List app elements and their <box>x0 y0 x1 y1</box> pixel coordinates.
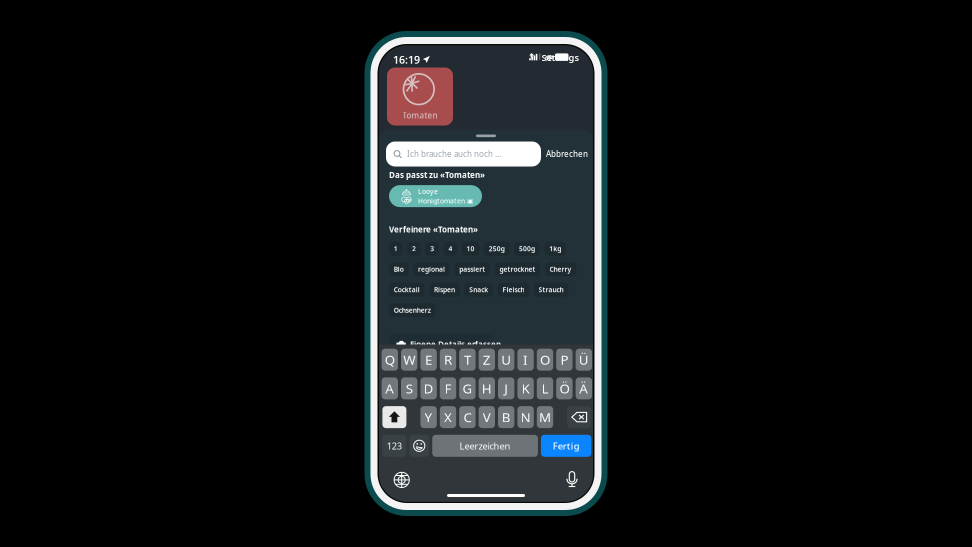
staticText: Snack <box>469 285 488 294</box>
button[interactable]: V <box>479 406 495 428</box>
button[interactable]: Strauch <box>534 283 568 297</box>
staticText: regional <box>418 265 445 274</box>
staticText: D <box>424 379 434 397</box>
button[interactable]: Diktieren <box>565 471 578 488</box>
button[interactable]: getrocknet <box>495 262 540 276</box>
staticText: Eigene Details erfassen <box>410 339 501 350</box>
staticText: A <box>385 379 394 397</box>
button[interactable]: passiert <box>454 262 490 276</box>
staticText: I <box>523 351 528 368</box>
button[interactable]: Snack <box>464 283 493 297</box>
button[interactable]: P <box>556 349 573 371</box>
button[interactable]: Y <box>420 406 437 428</box>
button[interactable]: Löschen <box>567 406 591 428</box>
staticText: Strauch <box>539 285 564 294</box>
button[interactable]: Ü <box>576 349 592 371</box>
staticText: Tomaten <box>402 110 437 121</box>
button[interactable]: 500g <box>514 242 540 256</box>
button[interactable]: R <box>440 349 456 371</box>
staticText: Fertig <box>553 440 580 452</box>
button[interactable]: U <box>498 349 514 371</box>
button[interactable]: 10 <box>462 242 479 256</box>
button[interactable]: K <box>517 377 534 399</box>
button[interactable]: Z <box>479 349 495 371</box>
button[interactable]: Ä <box>576 377 592 399</box>
staticText: 16:19 <box>393 52 420 67</box>
button[interactable]: F <box>440 377 456 399</box>
button[interactable]: G <box>459 377 476 399</box>
staticText: B <box>502 408 511 426</box>
button[interactable]: M <box>537 406 553 428</box>
button[interactable]: D <box>420 377 437 399</box>
button[interactable]: Looye <box>389 185 482 207</box>
button[interactable]: Eigene Details erfassen <box>389 333 492 355</box>
staticText: Bio <box>394 265 404 274</box>
button[interactable]: C <box>459 406 476 428</box>
button[interactable]: E <box>420 349 437 371</box>
button[interactable]: B <box>498 406 514 428</box>
button[interactable]: 123 <box>382 435 406 457</box>
staticText: passiert <box>459 265 485 274</box>
button[interactable]: regional <box>413 262 450 276</box>
staticText: Q <box>385 351 395 368</box>
button[interactable]: Q <box>382 349 398 371</box>
staticText: 1 <box>394 244 398 253</box>
button[interactable]: Tomaten <box>387 67 453 125</box>
button[interactable]: J <box>498 377 514 399</box>
button[interactable]: I <box>517 349 534 371</box>
button[interactable]: Cocktail <box>389 283 425 297</box>
button[interactable]: Emoji <box>409 435 429 457</box>
staticText: X <box>444 408 452 426</box>
staticText: Ich brauche auch noch … <box>407 149 501 159</box>
staticText: C <box>463 408 471 426</box>
staticText: Cherry <box>550 265 572 274</box>
button[interactable]: Leerzeichen <box>432 435 538 457</box>
button[interactable]: 3 <box>425 242 439 256</box>
staticText: Looye <box>418 187 438 196</box>
staticText: G <box>462 379 472 397</box>
button[interactable]: H <box>479 377 495 399</box>
button[interactable]: 1 <box>389 242 403 256</box>
button[interactable]: S <box>401 377 417 399</box>
staticText: E <box>425 351 432 368</box>
button[interactable]: Ö <box>556 377 573 399</box>
staticText: 2 <box>412 244 416 253</box>
button[interactable]: 250g <box>484 242 510 256</box>
staticText: Ü <box>579 351 589 368</box>
button[interactable]: O <box>537 349 553 371</box>
button[interactable]: Fertig <box>541 435 591 457</box>
staticText: Abbrechen <box>546 149 588 159</box>
staticText: Z <box>483 351 491 368</box>
staticText: Cocktail <box>394 285 420 294</box>
staticText: U <box>501 351 511 368</box>
button[interactable]: W <box>401 349 417 371</box>
button[interactable]: Umschalten <box>382 406 406 428</box>
staticText: Fleisch <box>502 285 524 294</box>
staticText: S <box>406 379 413 397</box>
button[interactable]: N <box>517 406 534 428</box>
staticText: 3 <box>430 244 434 253</box>
staticText: O <box>540 351 550 368</box>
button[interactable]: 4 <box>444 242 457 256</box>
button[interactable]: 1kg <box>544 242 566 256</box>
button[interactable]: X <box>440 406 456 428</box>
staticText: J <box>504 379 508 397</box>
staticText: Ä <box>579 379 588 397</box>
button[interactable]: Tastatur wechseln <box>393 471 410 488</box>
button[interactable]: Bio <box>389 262 409 276</box>
button[interactable]: Ochsenherz <box>389 303 436 317</box>
staticText: 250g <box>489 244 505 253</box>
staticText: Verfeinere «Tomaten» <box>389 224 478 235</box>
button[interactable]: 2 <box>407 242 421 256</box>
button[interactable]: A <box>382 377 398 399</box>
button[interactable]: Fleisch <box>498 283 529 297</box>
staticText: H <box>482 379 492 397</box>
button[interactable]: L <box>537 377 553 399</box>
staticText: Das passt zu «Tomaten» <box>389 169 485 180</box>
button[interactable]: T <box>459 349 476 371</box>
button[interactable]: Cherry <box>545 262 576 276</box>
button[interactable]: Abbrechen <box>546 149 588 159</box>
button[interactable]: Rispen <box>429 283 460 297</box>
staticText: 10 <box>467 244 475 253</box>
staticText: 1kg <box>549 244 561 253</box>
